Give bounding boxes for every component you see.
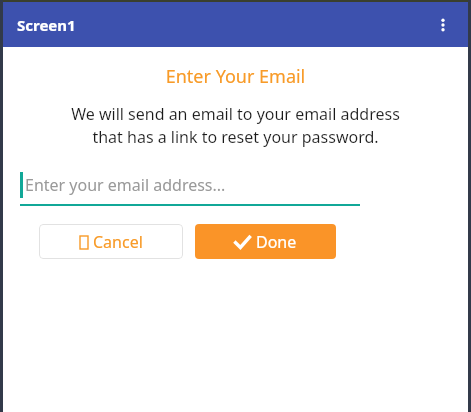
staticText: Enter Your Email bbox=[3, 64, 468, 89]
staticText: We will send an email to your email addr… bbox=[3, 103, 468, 148]
button[interactable]: More options bbox=[426, 8, 460, 42]
staticText: Done bbox=[256, 231, 297, 253]
staticText: Enter your email address... bbox=[25, 174, 226, 196]
button[interactable]: Enter your email address... bbox=[20, 170, 360, 206]
button[interactable]: Done bbox=[195, 224, 336, 259]
staticText: Cancel bbox=[93, 231, 143, 253]
staticText: Screen1 bbox=[17, 15, 76, 35]
button[interactable]: Cancel bbox=[39, 224, 183, 259]
